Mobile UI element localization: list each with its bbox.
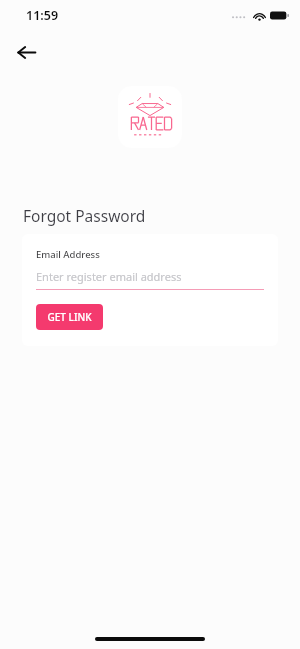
button[interactable]: Rated Places logo xyxy=(118,86,182,148)
staticText: Enter register email address xyxy=(36,269,182,284)
staticText: Forgot Password xyxy=(23,205,146,226)
button[interactable]: Back xyxy=(8,34,44,70)
button[interactable]: Enter register email address xyxy=(36,269,264,290)
staticText: GET LINK xyxy=(47,310,92,324)
button[interactable]: GET LINK xyxy=(36,304,103,330)
staticText: 11:59 xyxy=(26,7,59,24)
staticText: Email Address xyxy=(36,248,100,261)
